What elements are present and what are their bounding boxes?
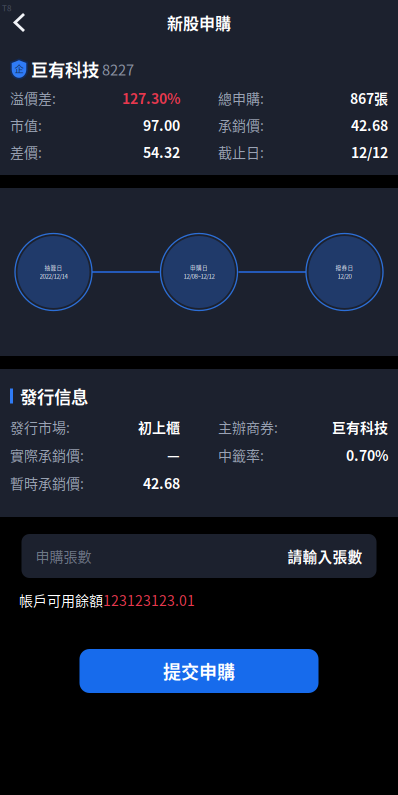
staticText: 請輸入張數 (287, 545, 362, 567)
staticText: 企 (14, 62, 23, 75)
staticText: 抽籤日 (44, 263, 62, 272)
staticText: 撥券日 (335, 263, 353, 272)
staticText: 0.70% (346, 445, 388, 465)
staticText: 帳戶可用餘額 (19, 590, 103, 610)
staticText: 巨有科技 (31, 56, 99, 82)
staticText: 42.68 (143, 473, 180, 493)
staticText: 總申購: (218, 88, 264, 108)
staticText: 8227 (102, 58, 134, 80)
staticText: 12/08~12/12 (183, 272, 214, 280)
staticText: T8 (2, 2, 11, 14)
staticText: 申購張數 (35, 546, 91, 566)
staticText: — (167, 445, 180, 465)
button[interactable]: Back (0, 2, 38, 42)
staticText: 867張 (350, 88, 388, 108)
staticText: 實際承銷價: (10, 445, 84, 465)
staticText: 中籤率: (218, 445, 264, 465)
staticText: 發行信息 (20, 383, 88, 409)
staticText: 新股申購 (167, 11, 231, 34)
staticText: 溢價差: (10, 88, 56, 108)
button[interactable]: 提交申購 (79, 649, 318, 693)
staticText: 初上櫃 (138, 417, 180, 437)
staticText: 2022/12/14 (39, 272, 67, 280)
staticText: 巨有科技 (332, 417, 388, 437)
staticText: 127.30% (122, 88, 180, 108)
staticText: 截止日: (218, 142, 264, 162)
staticText: 申購日 (190, 263, 208, 272)
staticText: 97.00 (143, 115, 180, 135)
staticText: 市值: (10, 115, 42, 135)
staticText: 123123123.01 (103, 590, 195, 610)
staticText: 提交申購 (163, 658, 235, 684)
staticText: 暫時承銷價: (10, 473, 84, 493)
staticText: 42.68 (351, 115, 388, 135)
staticText: 12/12 (351, 142, 388, 162)
staticText: 12/20 (337, 272, 351, 280)
staticText: 發行市場: (10, 417, 70, 437)
staticText: 主辦商券: (218, 417, 278, 437)
staticText: 差價: (10, 142, 42, 162)
staticText: 承銷價: (218, 115, 264, 135)
staticText: 54.32 (143, 142, 180, 162)
